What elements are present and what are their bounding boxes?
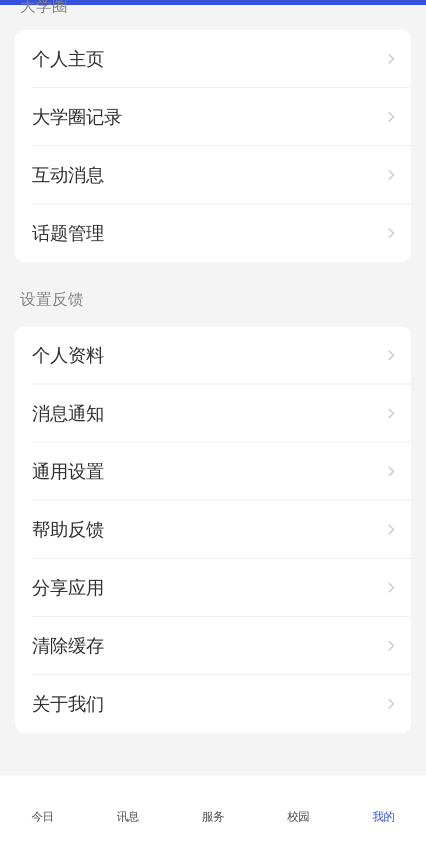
button[interactable]: 服务 [170, 775, 256, 866]
button[interactable]: 关于我们 [15, 675, 411, 733]
staticText: 设置反馈 [20, 290, 84, 309]
staticText: 分享应用 [32, 576, 104, 599]
staticText: 我的 [372, 809, 394, 824]
button[interactable]: 个人资料 [15, 326, 411, 384]
button[interactable]: 互动消息 [15, 146, 411, 204]
button[interactable]: 消息通知 [15, 384, 411, 443]
button[interactable]: 通用设置 [15, 443, 411, 501]
button[interactable]: 帮助反馈 [15, 501, 411, 559]
staticText: 校园 [287, 809, 309, 824]
staticText: 大学圈 [20, 0, 68, 16]
staticText: 帮助反馈 [32, 518, 104, 541]
staticText: 今日 [32, 809, 54, 824]
staticText: 清除缓存 [32, 634, 104, 657]
button[interactable]: 清除缓存 [15, 617, 411, 675]
staticText: 话题管理 [32, 222, 104, 245]
staticText: 通用设置 [32, 460, 104, 483]
staticText: 消息通知 [32, 402, 104, 425]
button[interactable]: 大学圈记录 [15, 88, 411, 146]
staticText: 个人资料 [32, 344, 104, 367]
button[interactable]: 分享应用 [15, 559, 411, 617]
staticText: 个人主页 [32, 47, 104, 70]
staticText: 讯息 [117, 809, 139, 824]
button[interactable]: 我的 [341, 775, 426, 866]
staticText: 互动消息 [32, 164, 104, 187]
staticText: 大学圈记录 [32, 106, 122, 129]
button[interactable]: 个人主页 [15, 30, 411, 88]
button[interactable]: 校园 [256, 775, 341, 866]
staticText: 服务 [202, 809, 224, 824]
staticText: 关于我们 [32, 692, 104, 715]
button[interactable]: 讯息 [85, 775, 170, 866]
button[interactable]: 今日 [0, 775, 85, 866]
button[interactable]: 话题管理 [15, 204, 411, 262]
